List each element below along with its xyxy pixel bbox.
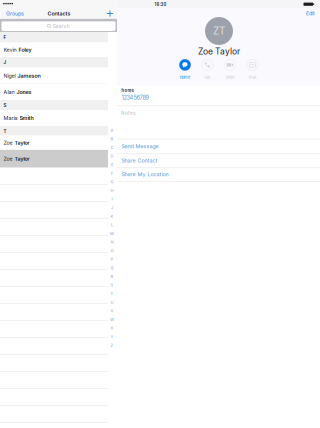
staticText: J [3,59,6,65]
staticText: Zoe Taylor [198,46,240,57]
staticText: Zoe [3,139,14,146]
staticText: Search [53,23,70,29]
staticText: Share Contact [121,157,157,164]
staticText: T [3,128,6,134]
staticText: A [110,128,113,133]
staticText: F [111,171,113,176]
button[interactable]: Zoe [0,150,108,167]
staticText: Q [110,265,113,270]
button[interactable]: Kevin [0,42,108,57]
staticText: Maria [3,115,19,121]
staticText: W [110,317,114,322]
staticText: J [111,205,113,210]
staticText: D [110,154,113,158]
staticText: 123456789 [121,94,148,101]
staticText: Alan [3,89,16,95]
button[interactable]: Send Message [117,139,320,153]
button[interactable]: 123456789 [121,93,201,102]
staticText: Zoe [3,155,14,162]
staticText: Contacts [47,10,70,17]
staticText: H [110,188,113,193]
button[interactable]: Maria [0,110,108,126]
staticText: T [110,291,113,296]
staticText: home [121,88,133,93]
staticText: Taylor [14,155,29,162]
button[interactable]: Zoe [0,135,108,150]
staticText: K [110,214,113,219]
button[interactable]: Alan [0,84,108,100]
staticText: E [111,162,113,167]
button[interactable]: Nigel [0,67,108,84]
staticText: Foley [18,46,31,53]
button[interactable]: Edit [297,9,315,17]
staticText: M [110,231,114,236]
staticText: call [204,75,210,80]
staticText: Nigel [3,72,17,79]
staticText: V [110,308,113,313]
staticText: L [111,222,113,227]
button[interactable]: Groups [6,9,28,19]
button[interactable]: mail [241,58,263,81]
staticText: S [3,102,6,108]
staticText: F [3,34,6,40]
staticText: 16:30 [155,2,167,7]
staticText: Groups [6,10,24,17]
staticText: Y [110,334,113,339]
staticText: Z [110,343,113,348]
staticText: video [225,75,234,80]
staticText: O [110,248,113,253]
button[interactable]: Share Contact [117,154,320,167]
staticText: Taylor [14,139,29,146]
button[interactable]: Share My Location [117,167,320,181]
staticText: S [110,283,113,287]
button[interactable]: home [174,58,196,81]
staticText: Kevin [3,46,18,53]
staticText: N [110,240,113,244]
staticText: U [110,300,113,305]
staticText: P [110,257,113,262]
staticText: Send Message [121,143,158,150]
button[interactable]: call [196,58,218,81]
staticText: Edit [306,10,315,16]
staticText: C [110,145,113,150]
staticText: home [180,75,190,80]
button[interactable]: video [219,58,241,81]
staticText: Jones [16,89,31,95]
staticText: ZT [213,25,225,37]
button[interactable]: Add contact [104,8,115,19]
staticText: B [110,136,113,141]
staticText: Notes [121,110,136,116]
staticText: G [110,179,113,184]
staticText: Share My Location [121,171,168,178]
staticText: Jameson [17,72,40,79]
staticText: Smith [19,115,33,121]
staticText: mail [248,75,256,80]
staticText: X [110,326,113,330]
staticText: R [110,274,113,279]
